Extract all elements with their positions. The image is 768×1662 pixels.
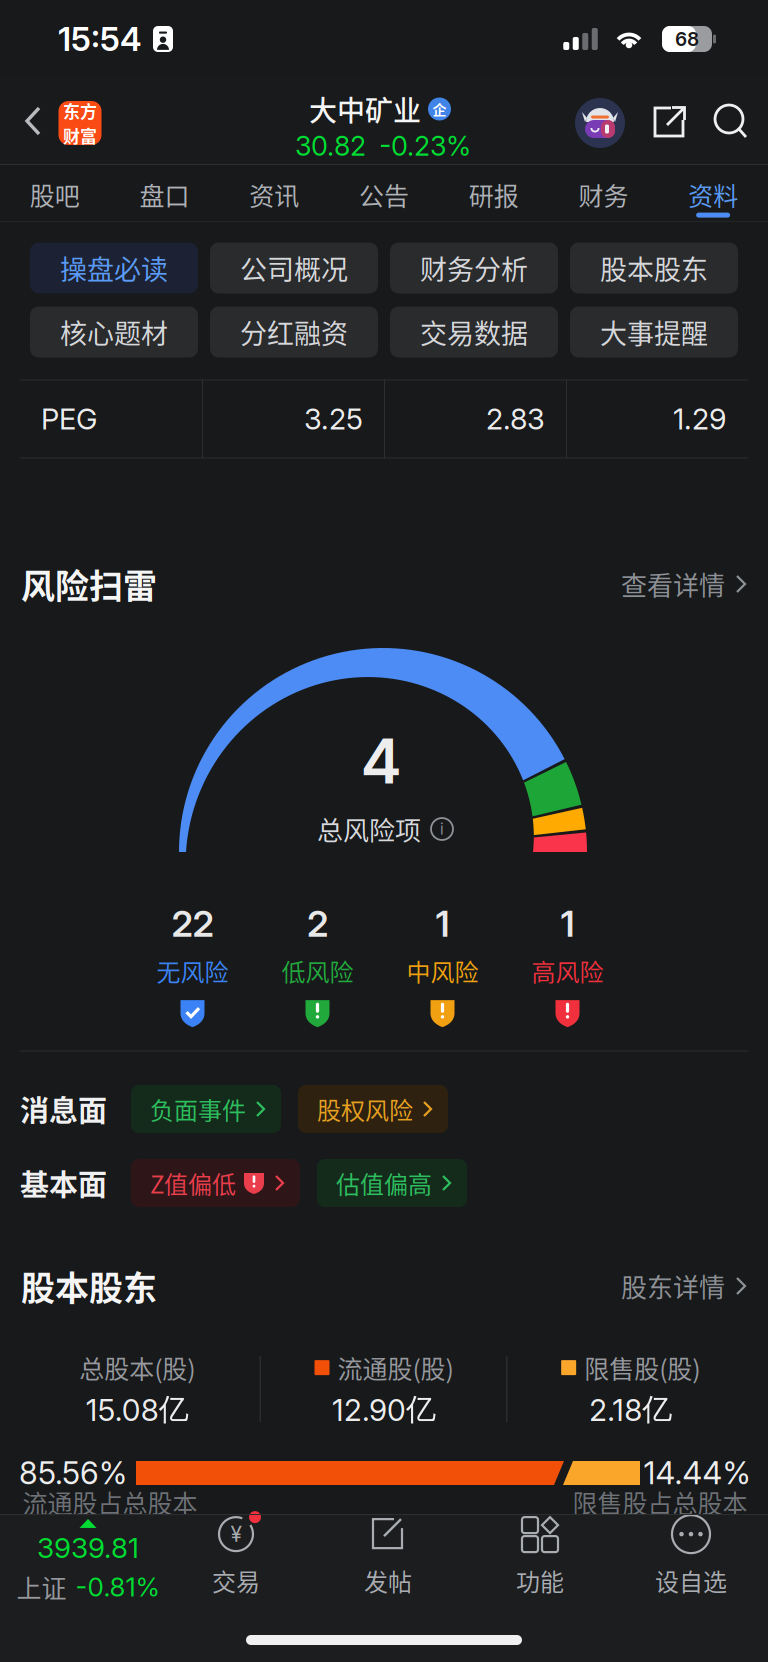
staticText: 核心题材 xyxy=(60,312,168,352)
staticText: 大中矿业 xyxy=(309,89,421,129)
staticText: -0.81% xyxy=(75,1571,159,1603)
staticText: 上证 xyxy=(16,1569,66,1605)
staticText: 大事提醒 xyxy=(600,312,708,352)
staticText: 无风险 xyxy=(156,953,228,988)
button[interactable]: 查看详情 xyxy=(621,565,747,603)
staticText: 30.82 xyxy=(295,130,366,162)
button[interactable]: 负面事件 xyxy=(131,1085,281,1133)
staticText: 交易数据 xyxy=(420,312,528,352)
staticText: 15:54 xyxy=(58,19,142,59)
button[interactable]: 3939.81 xyxy=(16,1519,159,1605)
button[interactable]: 股吧 xyxy=(0,164,110,222)
staticText: 总股本(股) xyxy=(79,1349,195,1386)
staticText: i xyxy=(440,820,444,838)
staticText: 4 xyxy=(360,723,401,798)
staticText: 流通股占总股本 xyxy=(22,1484,197,1520)
button[interactable]: 发帖 xyxy=(363,1514,413,1598)
staticText: 限售股占总股本 xyxy=(572,1484,747,1520)
button[interactable]: 功能 xyxy=(515,1514,565,1598)
button[interactable]: 财务 xyxy=(549,164,658,222)
staticText: 分红融资 xyxy=(240,312,348,352)
staticText: Z值偏低 xyxy=(150,1166,236,1200)
button[interactable]: 东方财富 xyxy=(58,101,101,145)
staticText: 负面事件 xyxy=(150,1092,246,1126)
staticText: 14.44% xyxy=(643,1454,750,1492)
staticText: 操盘必读 xyxy=(60,248,168,288)
staticText: 设自选 xyxy=(655,1563,727,1598)
staticText: 研报 xyxy=(469,176,519,213)
staticText: 股本股东 xyxy=(600,248,708,288)
button[interactable]: 估值偏高 xyxy=(317,1159,467,1207)
staticText: 风险扫雷 xyxy=(21,559,157,609)
staticText: 财富 xyxy=(63,123,97,148)
staticText: 盘口 xyxy=(140,176,190,213)
staticText: 功能 xyxy=(516,1563,564,1598)
button[interactable]: 股本股东 xyxy=(570,242,738,293)
staticText: 基本面 xyxy=(20,1162,107,1204)
staticText: 资料 xyxy=(688,176,738,213)
button[interactable]: 股东详情 xyxy=(621,1267,747,1305)
staticText: 交易 xyxy=(212,1563,260,1598)
staticText: 15.08亿 xyxy=(86,1391,189,1428)
staticText: 股吧 xyxy=(30,176,80,213)
staticText: 资讯 xyxy=(249,176,299,213)
staticText: -0.23% xyxy=(379,130,471,162)
staticText: 查看详情 xyxy=(621,565,725,603)
button[interactable]: Z值偏低 xyxy=(131,1159,300,1207)
staticText: 限售股(股) xyxy=(584,1349,700,1386)
staticText: ¥ xyxy=(230,1521,241,1547)
staticText: 2.83 xyxy=(486,401,545,437)
staticText: 公告 xyxy=(359,176,409,213)
staticText: PEG xyxy=(41,401,97,437)
staticText: 消息面 xyxy=(20,1088,107,1130)
button[interactable]: 搜索 xyxy=(700,79,762,165)
staticText: 股东详情 xyxy=(621,1267,725,1305)
staticText: 财务分析 xyxy=(420,248,528,288)
staticText: 发帖 xyxy=(364,1563,412,1598)
staticText: 高风险 xyxy=(531,953,603,988)
button[interactable]: 交易数据 xyxy=(390,306,558,357)
button[interactable]: 股权风险 xyxy=(298,1085,448,1133)
staticText: 公司概况 xyxy=(240,248,348,288)
staticText: 1 xyxy=(435,902,449,945)
staticText: 企 xyxy=(432,99,446,119)
staticText: 财务 xyxy=(578,176,628,213)
button[interactable]: 操盘必读 xyxy=(30,242,198,293)
staticText: 中风险 xyxy=(406,953,478,988)
staticText: 68 xyxy=(675,27,699,50)
staticText: 12.90亿 xyxy=(332,1391,436,1428)
button[interactable]: 大事提醒 xyxy=(570,306,738,357)
button[interactable]: 核心题材 xyxy=(30,306,198,357)
button[interactable]: 设自选 xyxy=(655,1514,727,1598)
button[interactable]: 财务分析 xyxy=(390,242,558,293)
button[interactable]: 公告 xyxy=(329,164,439,222)
staticText: 股本股东 xyxy=(21,1261,157,1311)
button[interactable]: 公司概况 xyxy=(210,242,378,293)
staticText: 东方 xyxy=(63,98,97,123)
staticText: 估值偏高 xyxy=(336,1166,432,1200)
button[interactable]: 返回 xyxy=(12,78,56,164)
staticText: 85.56% xyxy=(19,1454,127,1492)
staticText: 3939.81 xyxy=(37,1531,139,1565)
staticText: 2.18亿 xyxy=(589,1391,672,1428)
staticText: 总风险项 xyxy=(317,810,421,848)
staticText: 1 xyxy=(560,902,574,945)
button[interactable]: 分享 xyxy=(639,79,699,165)
button[interactable]: 智能助手 xyxy=(565,80,635,166)
staticText: 3.25 xyxy=(304,401,363,437)
staticText: 2 xyxy=(307,902,328,945)
staticText: 低风险 xyxy=(281,953,353,988)
staticText: 1.29 xyxy=(673,401,727,437)
button[interactable]: 资讯 xyxy=(219,164,329,222)
button[interactable]: 盘口 xyxy=(110,164,219,222)
button[interactable]: 研报 xyxy=(439,164,549,222)
staticText: 股权风险 xyxy=(317,1092,413,1126)
button[interactable]: 分红融资 xyxy=(210,306,378,357)
button[interactable]: ¥ xyxy=(211,1514,261,1598)
staticText: 22 xyxy=(171,902,213,945)
button[interactable]: 资料 xyxy=(658,164,768,222)
staticText: 流通股(股) xyxy=(337,1349,453,1386)
